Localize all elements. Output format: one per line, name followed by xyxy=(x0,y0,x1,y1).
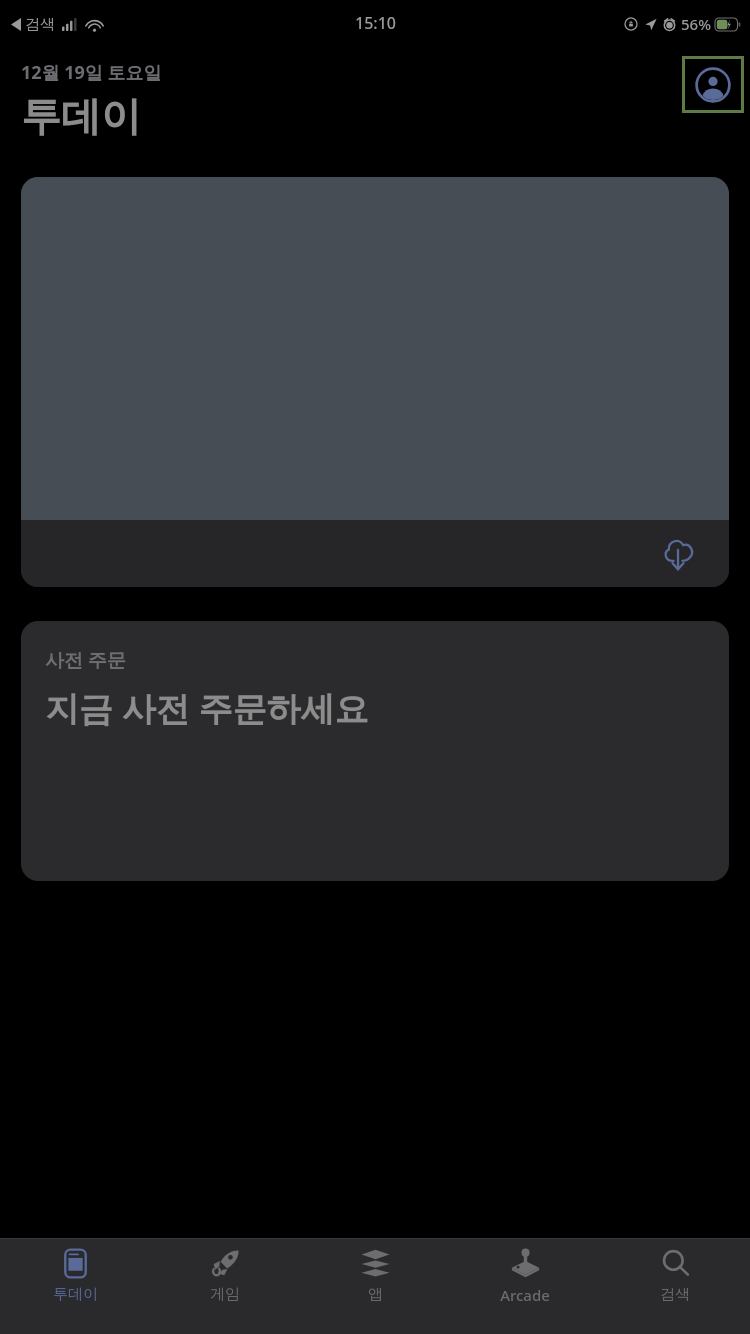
button[interactable]: Arcade xyxy=(450,1239,600,1334)
staticText: 투데이 xyxy=(21,91,141,141)
staticText: 투데이 xyxy=(53,1285,98,1304)
button[interactable]: 앱 xyxy=(300,1239,450,1334)
staticText: 검색 xyxy=(660,1285,690,1304)
button[interactable]: 계정 xyxy=(685,59,741,110)
staticText: 게임 xyxy=(210,1285,240,1304)
staticText: 앱 xyxy=(368,1285,383,1304)
staticText: 지금 사전 주문하세요 xyxy=(45,685,369,731)
button[interactable]: 투데이 xyxy=(0,1239,150,1334)
button[interactable] xyxy=(21,177,729,587)
button[interactable]: 게임 xyxy=(150,1239,300,1334)
button[interactable]: 검색 xyxy=(600,1239,750,1334)
button[interactable]: 사전 주문 xyxy=(21,621,729,881)
staticText: 12월 19일 토요일 xyxy=(21,60,162,85)
staticText: Arcade xyxy=(500,1285,550,1305)
staticText: 사전 주문 xyxy=(45,647,126,673)
staticText: 검색 xyxy=(25,15,55,34)
staticText: 15:10 xyxy=(355,12,396,34)
staticText: 56% xyxy=(681,14,711,34)
